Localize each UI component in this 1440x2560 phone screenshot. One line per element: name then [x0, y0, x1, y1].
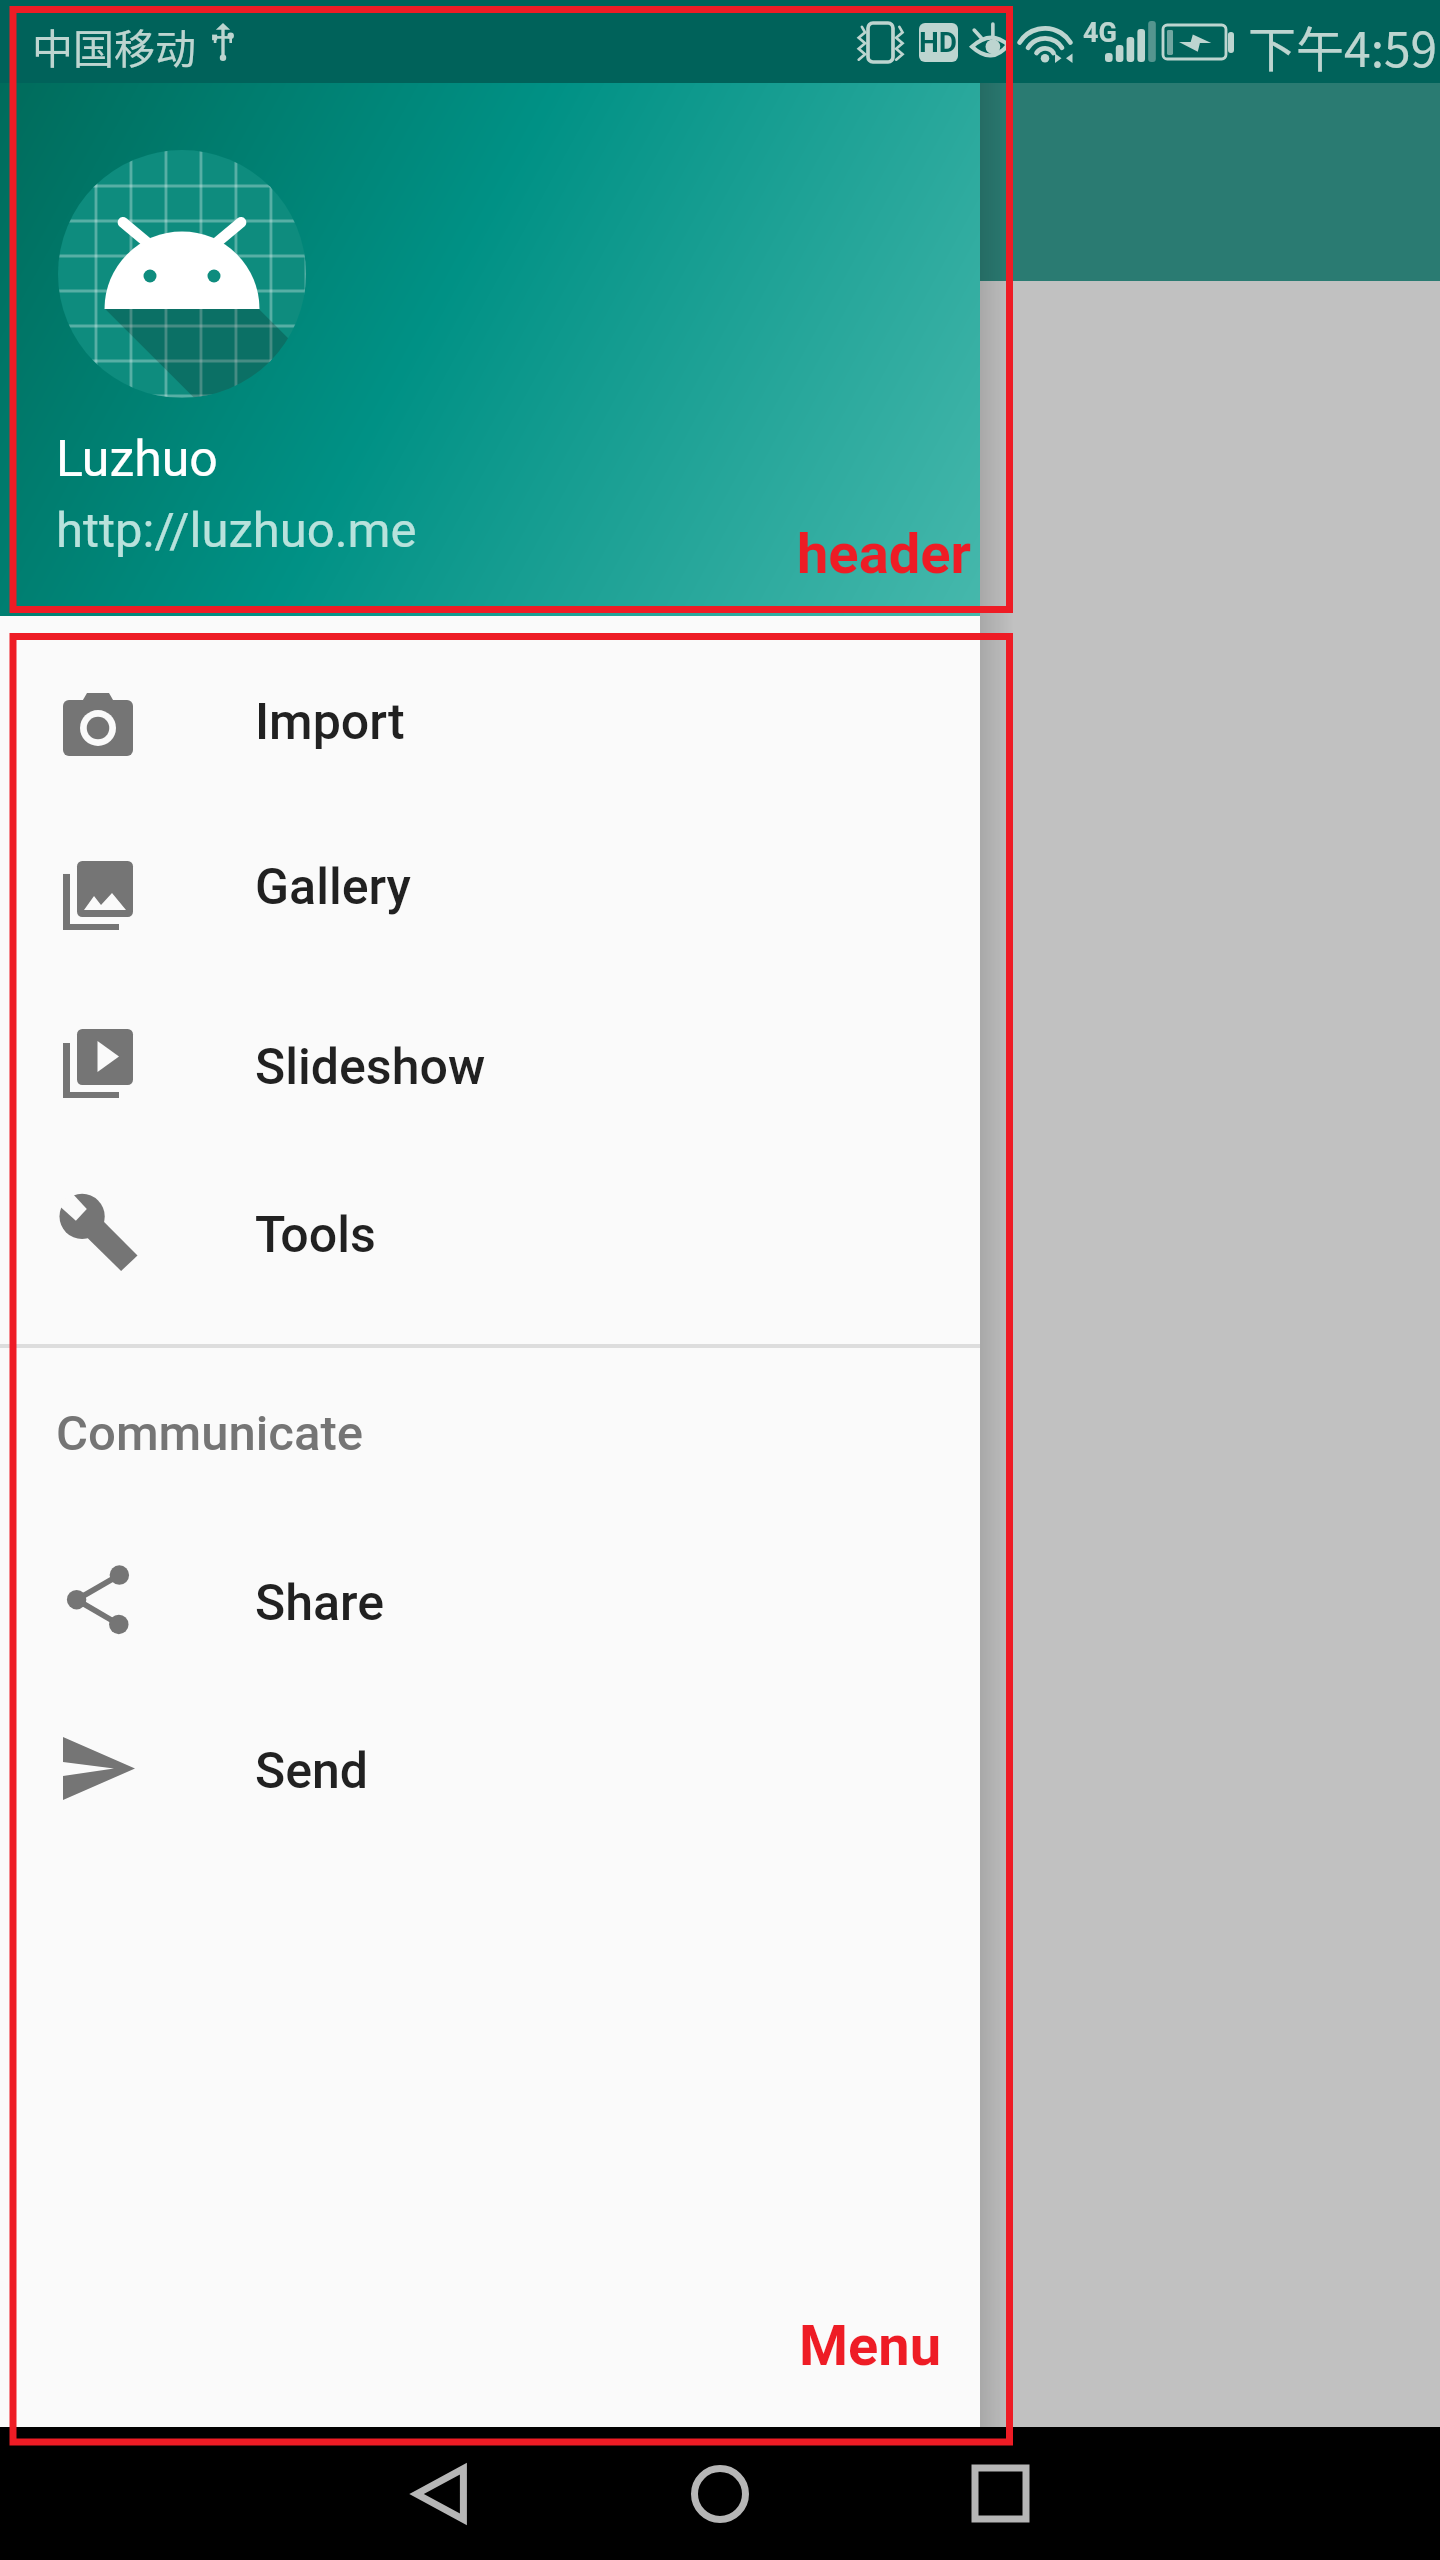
button[interactable]: Home [650, 2427, 790, 2560]
button[interactable]: Import [0, 640, 980, 808]
button[interactable]: Recents [930, 2427, 1070, 2560]
button[interactable]: Back [370, 2427, 510, 2560]
button[interactable]: Slideshow [0, 979, 980, 1147]
staticText: Tools [255, 1206, 376, 1265]
staticText: Communicate [56, 1405, 364, 1462]
staticText: Luzhuo [56, 430, 218, 489]
staticText: header [797, 521, 971, 587]
button[interactable]: Gallery [0, 811, 980, 979]
button[interactable]: Tools [0, 1148, 980, 1316]
staticText: Share [255, 1574, 384, 1633]
staticText: Slideshow [255, 1038, 486, 1097]
staticText: 4G [1083, 17, 1117, 49]
staticText: http://luzhuo.me [56, 502, 417, 559]
staticText: 中国移动 [32, 16, 196, 75]
button[interactable]: Send [0, 1684, 980, 1852]
staticText: HD [919, 26, 958, 59]
staticText: Send [255, 1742, 369, 1801]
button[interactable]: Share [0, 1516, 980, 1684]
staticText: Menu [799, 2313, 942, 2379]
staticText: 下午4:59 [1248, 11, 1438, 81]
staticText: Import [255, 693, 405, 752]
staticText: Gallery [255, 858, 411, 917]
